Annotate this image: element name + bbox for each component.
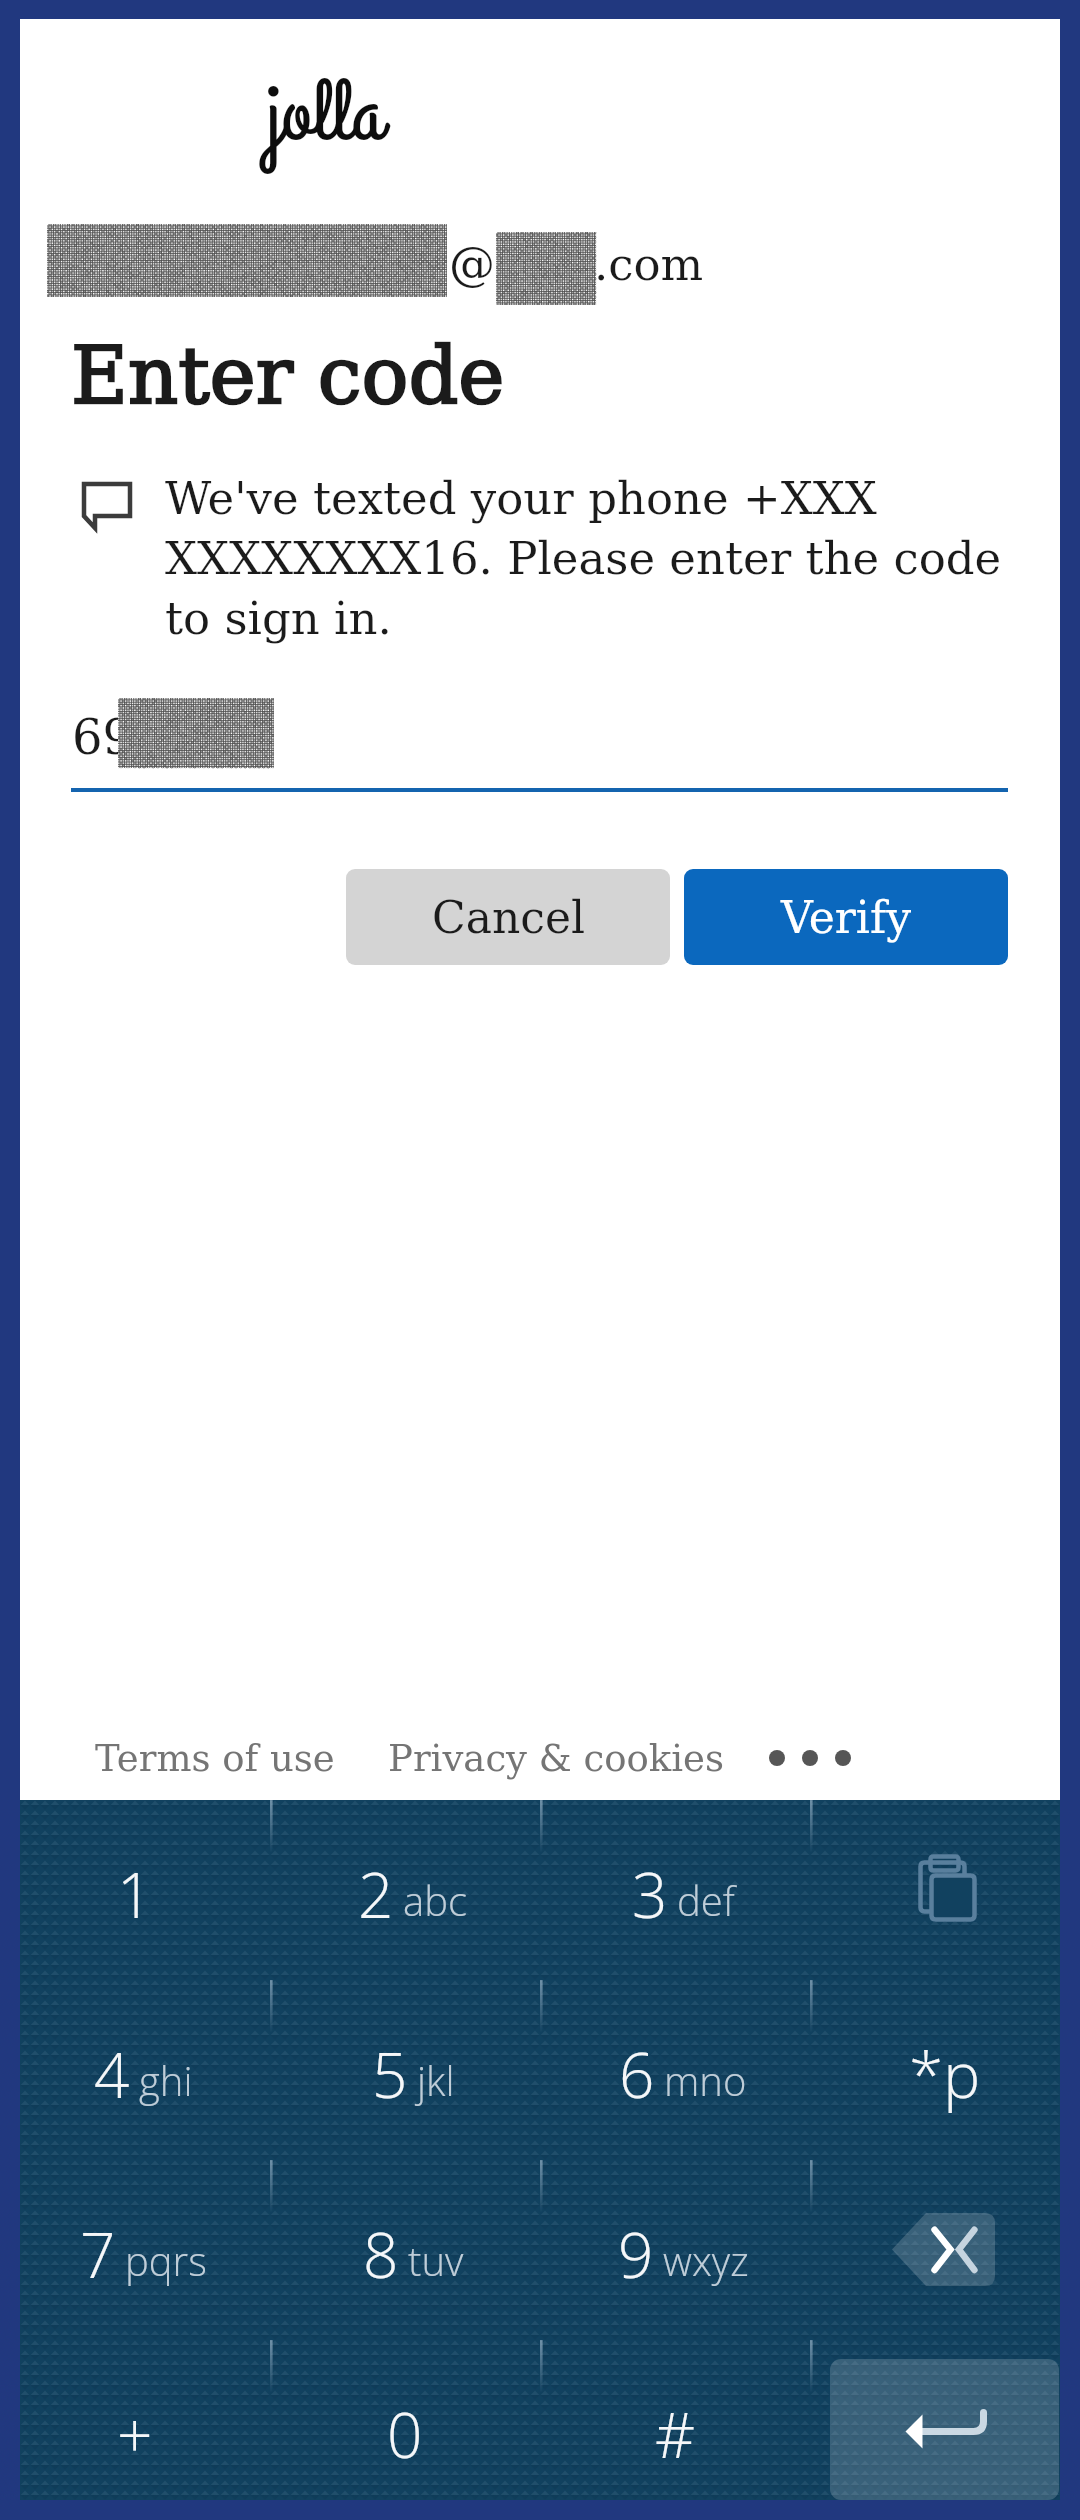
button[interactable]: Terms of use (95, 1737, 335, 1780)
staticText: Verify (781, 892, 912, 943)
button[interactable]: Enter (810, 2340, 1080, 2520)
staticText: 8 (363, 2212, 399, 2296)
button[interactable]: 9 (540, 2160, 810, 2340)
button[interactable]: 7 (0, 2160, 270, 2340)
staticText: + (117, 2392, 153, 2476)
other: Enter (830, 2359, 1059, 2500)
staticText: Enter code (71, 331, 505, 422)
button[interactable]: # (540, 2340, 810, 2520)
staticText: 6 (619, 2032, 655, 2116)
staticText: 5 (372, 2032, 408, 2116)
staticText: @ (449, 237, 495, 291)
staticText: def (677, 1873, 735, 1927)
staticText: tuv (408, 2233, 464, 2287)
staticText: 2 (358, 1852, 394, 1936)
staticText: 0 (387, 2392, 423, 2476)
staticText: pqrs (125, 2233, 207, 2287)
button[interactable]: + (0, 2340, 270, 2520)
button[interactable]: Paste (810, 1800, 1080, 1980)
staticText: ghi (139, 2053, 193, 2107)
button[interactable]: Cancel (346, 869, 670, 965)
staticText: .com (594, 238, 704, 290)
other: Paste (918, 1855, 974, 1921)
staticText: *p (909, 2032, 981, 2116)
staticText: abc (403, 1873, 468, 1927)
button[interactable]: Privacy & cookies (388, 1737, 724, 1780)
staticText: mno (664, 2053, 747, 2107)
button[interactable]: 6 (540, 1980, 810, 2160)
button[interactable]: 0 (270, 2340, 540, 2520)
staticText: 7 (80, 2212, 116, 2296)
staticText: 9 (618, 2212, 654, 2296)
staticText: 3 (632, 1852, 668, 1936)
staticText: jkl (417, 2053, 455, 2107)
other: Backspace (892, 2213, 995, 2286)
staticText: # (655, 2392, 696, 2476)
staticText: 1 (117, 1852, 153, 1936)
staticText: 4 (94, 2032, 130, 2116)
button[interactable]: 1 (0, 1800, 270, 1980)
button[interactable]: 3 (540, 1800, 810, 1980)
staticText: wxyz (663, 2233, 749, 2287)
staticText: Cancel (432, 892, 585, 943)
button[interactable]: *p (810, 1980, 1080, 2160)
button[interactable]: 5 (270, 1980, 540, 2160)
button[interactable]: 2 (270, 1800, 540, 1980)
button[interactable]: Backspace (810, 2160, 1080, 2340)
button[interactable]: More options (766, 1738, 850, 1778)
staticText: We've texted your phone +XXX XXXXXXXX16.… (165, 472, 1065, 644)
button[interactable]: Verify (684, 869, 1008, 965)
button[interactable]: 4 (0, 1980, 270, 2160)
button[interactable]: 8 (270, 2160, 540, 2340)
staticText: 69 (72, 709, 134, 765)
staticText: jolla (267, 56, 383, 174)
